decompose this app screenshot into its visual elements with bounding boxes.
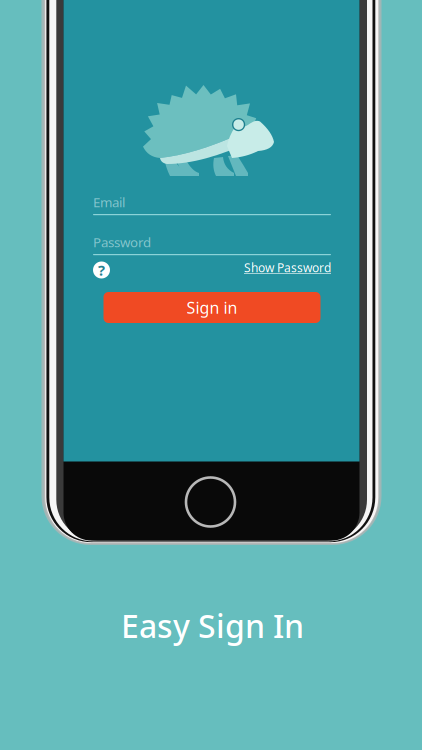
staticText: Email [93, 193, 125, 211]
button[interactable]: Sign in [103, 292, 320, 323]
staticText: Show Password [244, 259, 331, 275]
button[interactable]: Help [93, 261, 110, 278]
staticText: ? [98, 260, 105, 280]
button[interactable]: Home [186, 477, 235, 526]
staticText: Easy Sign In [121, 604, 304, 647]
button[interactable]: Show Password [250, 260, 331, 274]
staticText: Sign in [186, 297, 237, 318]
staticText: Password [93, 233, 151, 251]
